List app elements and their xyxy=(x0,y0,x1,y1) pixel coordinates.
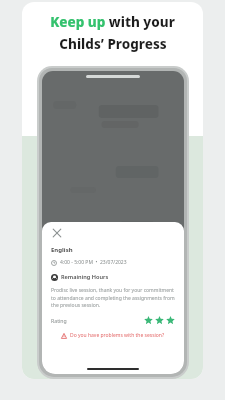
staticText: English xyxy=(51,246,73,254)
staticText: Do you have problems with the session? xyxy=(70,332,165,339)
staticText: Childs’ Progress xyxy=(59,35,167,53)
staticText: Keep up with your xyxy=(50,13,175,31)
staticText: Remaining Hours xyxy=(61,273,109,281)
button[interactable]: Rate session 3 stars xyxy=(144,316,175,325)
staticText: 4:00 - 5:00 PM • 23/07/2023 xyxy=(60,259,127,266)
staticText: Prodisc live session, thank you for your… xyxy=(51,287,175,308)
button[interactable]: Do you have problems with the session? xyxy=(51,332,175,339)
button[interactable]: Close xyxy=(51,227,63,239)
staticText: Rating xyxy=(51,317,67,324)
